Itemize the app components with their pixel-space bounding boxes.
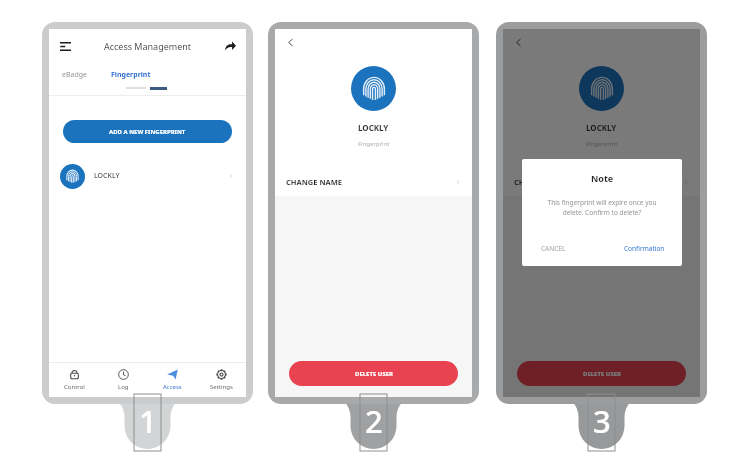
staticText: eBadge xyxy=(62,70,87,80)
staticText: CHANGE NAME xyxy=(286,177,342,187)
staticText: LOCKLY xyxy=(358,122,389,133)
staticText: 3 xyxy=(593,400,611,442)
staticText: Log xyxy=(118,383,129,391)
staticText: Access xyxy=(163,383,182,391)
button[interactable]: DELETE USER xyxy=(517,361,686,386)
staticText: Settings xyxy=(210,383,233,391)
button[interactable]: Share xyxy=(223,39,237,53)
staticText: LOCKLY xyxy=(586,122,617,133)
staticText: DELETE USER xyxy=(583,370,621,378)
button[interactable]: DELETE USER xyxy=(289,361,458,386)
button[interactable]: Back xyxy=(284,36,297,49)
button[interactable]: eBadge xyxy=(49,68,99,82)
button[interactable]: Log xyxy=(99,363,148,397)
button[interactable]: CHANGE NAME xyxy=(503,172,700,191)
staticText: DELETE USER xyxy=(355,370,393,378)
staticText: Fingerprint xyxy=(586,140,618,148)
staticText: Control xyxy=(64,383,85,391)
button[interactable]: Fingerprint xyxy=(99,68,163,82)
button[interactable]: LOCKLY xyxy=(49,162,246,190)
staticText: CHANGE NAME xyxy=(514,177,570,187)
staticText: Confirmation xyxy=(624,244,665,253)
button[interactable]: ADD A NEW FINGERPRINT xyxy=(63,120,232,143)
staticText: Access Management xyxy=(72,40,223,52)
button[interactable]: Access xyxy=(148,363,197,397)
button[interactable]: Confirmation xyxy=(624,244,665,253)
button[interactable]: Back xyxy=(512,36,525,49)
staticText: Note xyxy=(591,172,614,184)
staticText: Fingerprint xyxy=(111,70,151,80)
button[interactable]: Control xyxy=(49,363,99,397)
staticText: This fingerprint will expire once you de… xyxy=(539,198,665,217)
staticText: LOCKLY xyxy=(94,171,120,181)
button[interactable]: CHANGE NAME xyxy=(275,172,472,191)
button[interactable]: Menu xyxy=(58,39,72,53)
staticText: Fingerprint xyxy=(358,140,390,148)
staticText: 1 xyxy=(139,400,157,442)
button[interactable]: Settings xyxy=(197,363,246,397)
staticText: ADD A NEW FINGERPRINT xyxy=(109,128,186,136)
staticText: 2 xyxy=(365,400,383,442)
button[interactable]: CANCEL xyxy=(541,244,566,253)
staticText: CANCEL xyxy=(541,244,566,253)
